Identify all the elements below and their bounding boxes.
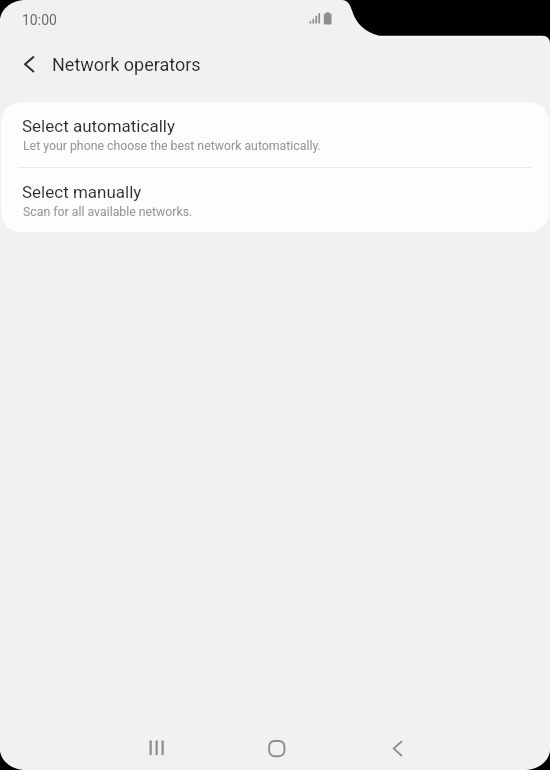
- button[interactable]: Navigate up: [9, 44, 49, 84]
- button[interactable]: Select automatically: [1, 102, 549, 167]
- button[interactable]: Back: [381, 727, 412, 770]
- other: Signal strength and battery: [309, 12, 333, 26]
- button[interactable]: Home: [261, 727, 292, 770]
- staticText: 10:00: [22, 12, 57, 28]
- button[interactable]: Recent apps: [142, 727, 173, 770]
- button[interactable]: Select manually: [1, 168, 549, 232]
- staticText: Scan for all available networks.: [23, 205, 193, 219]
- staticText: Select automatically: [22, 116, 175, 136]
- staticText: Select manually: [22, 182, 142, 202]
- staticText: Network operators: [52, 54, 201, 75]
- staticText: Let your phone choose the best network a…: [23, 139, 321, 153]
